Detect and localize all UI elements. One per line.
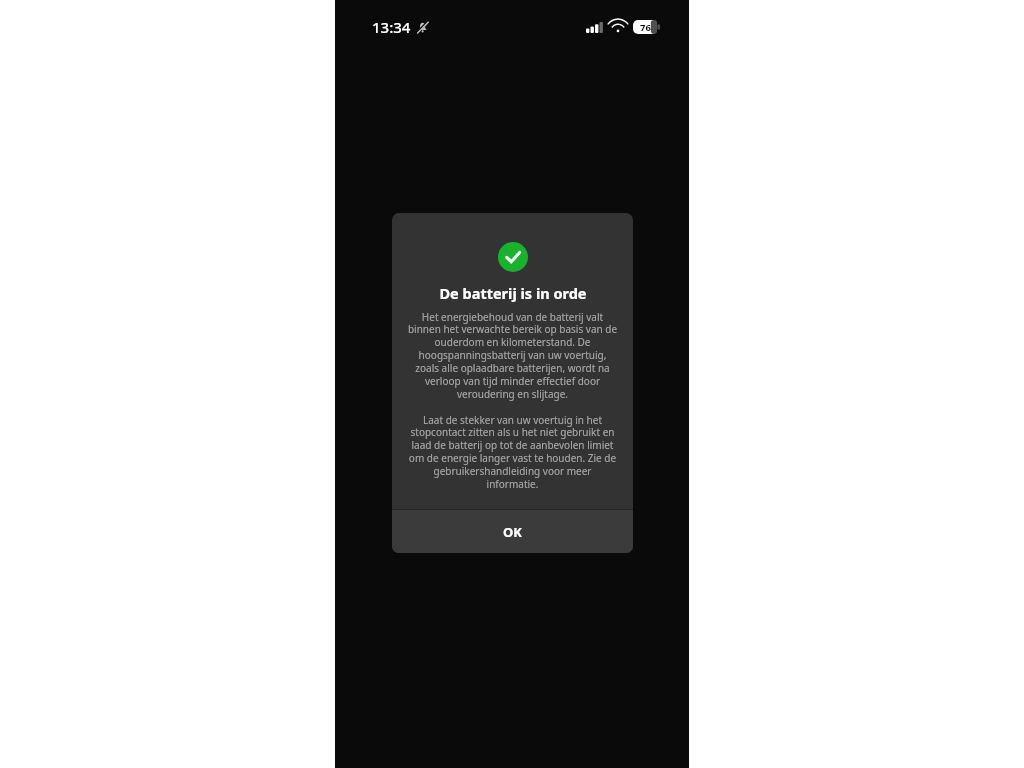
staticText: De batterij is in orde (439, 283, 587, 303)
staticText: Het energiebehoud van de batterij valt b… (407, 310, 618, 401)
staticText: Laat de stekker van uw voertuig in het s… (407, 413, 618, 491)
staticText: OK (503, 523, 522, 541)
staticText: 13:34 (372, 17, 411, 37)
button[interactable]: OK (392, 510, 633, 553)
staticText: 76 (640, 21, 651, 34)
other: Silent mode (416, 21, 429, 34)
